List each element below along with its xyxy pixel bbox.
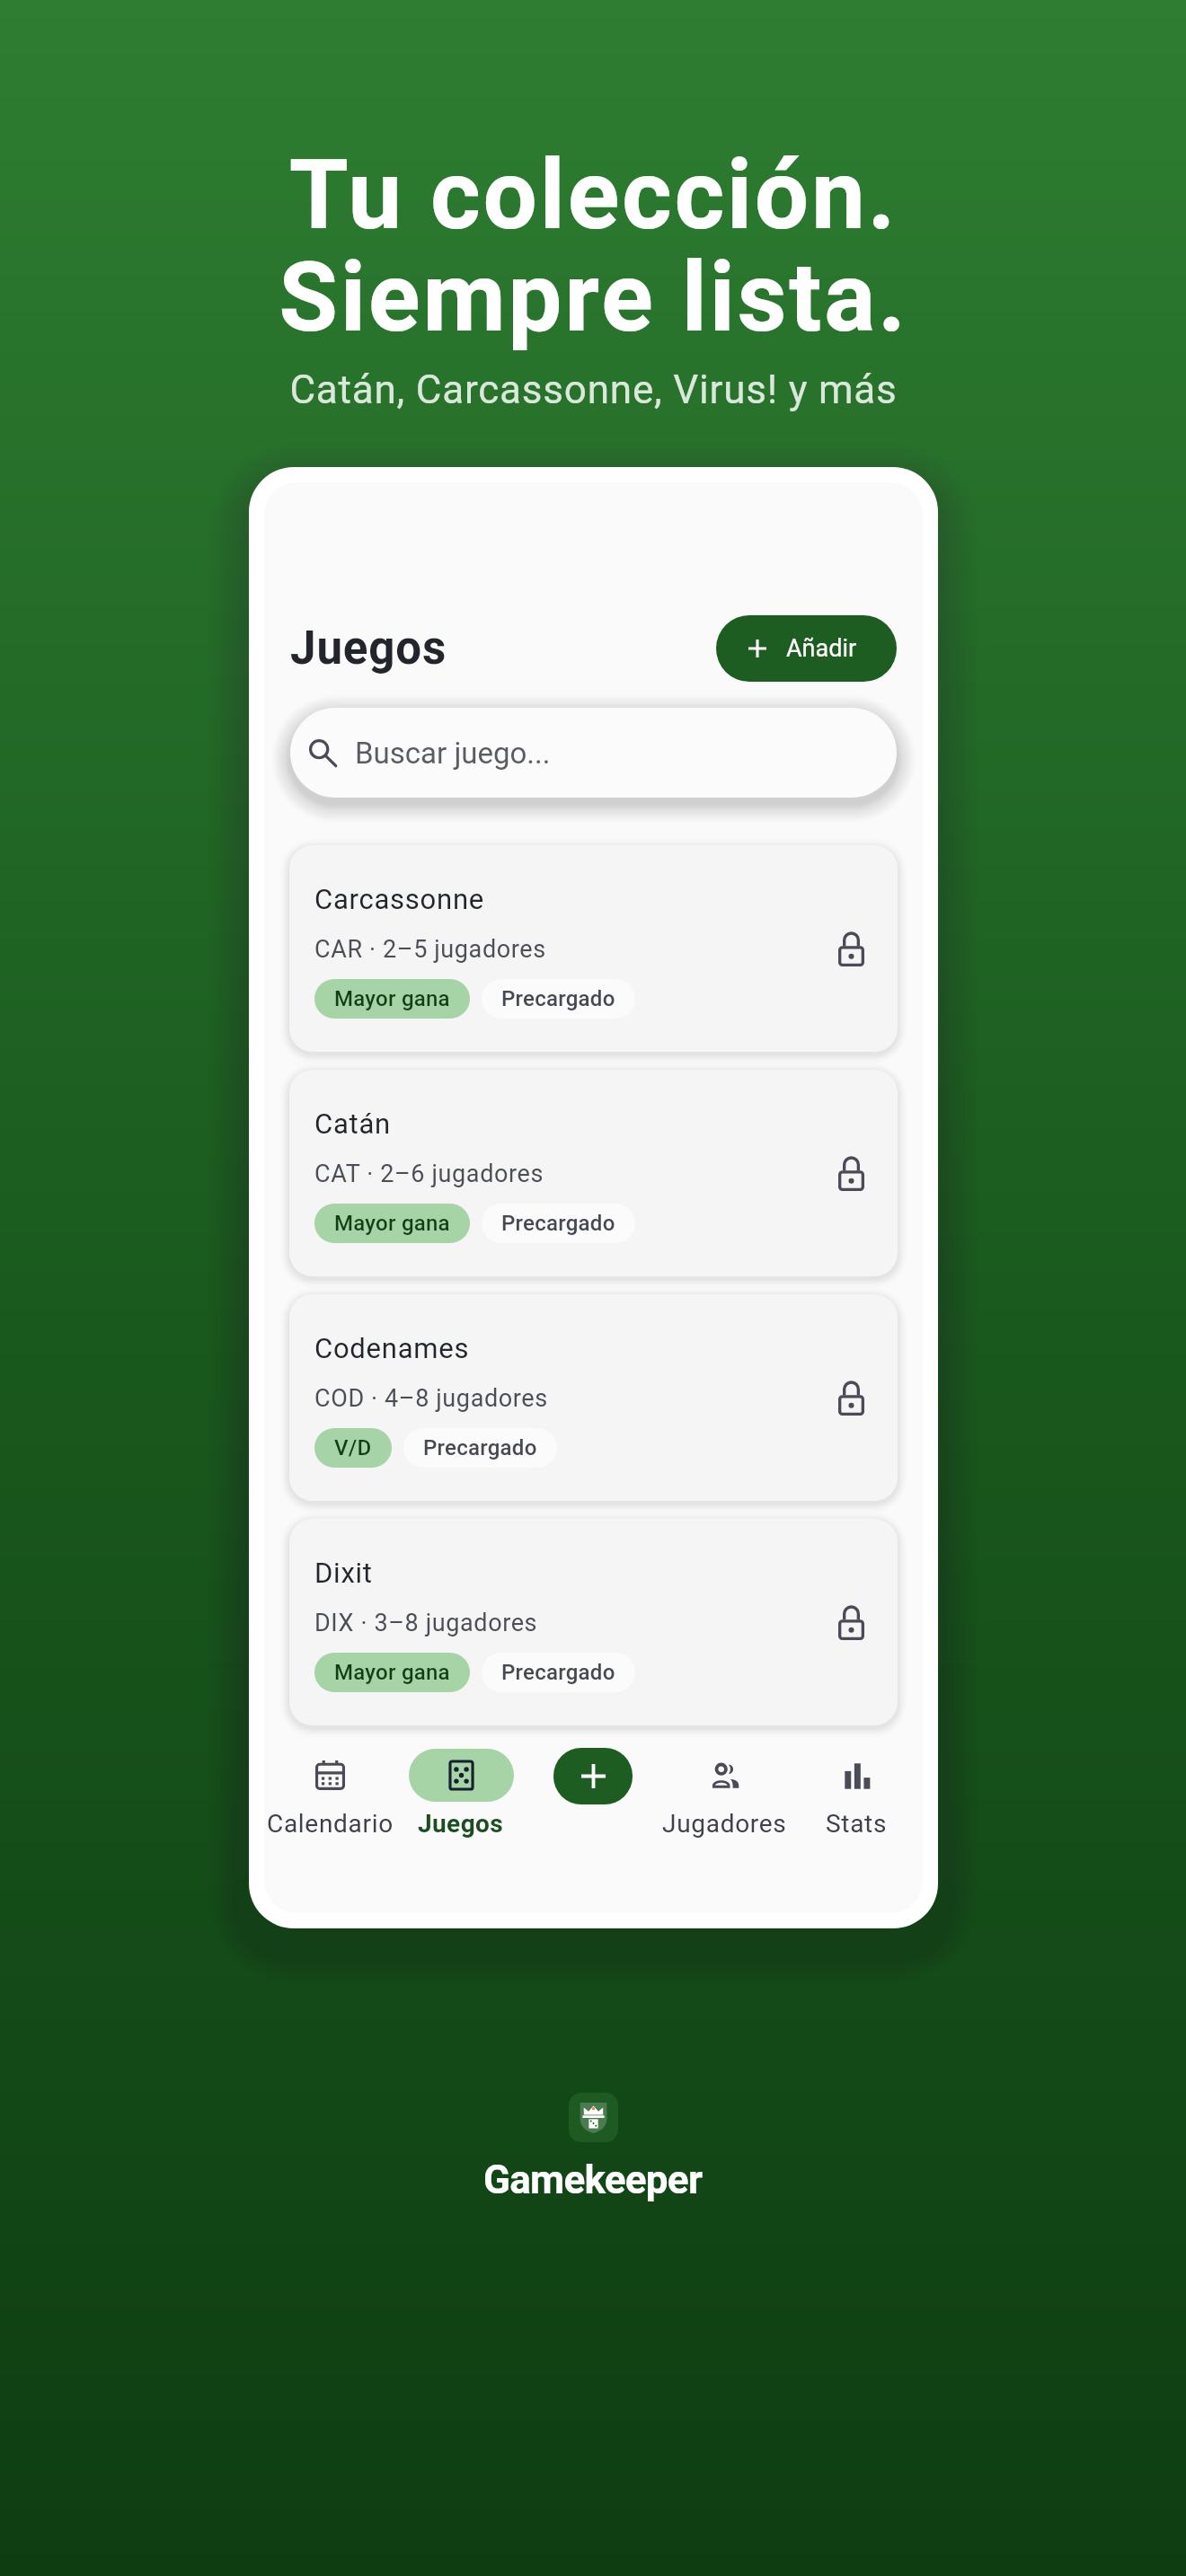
staticText: Gamekeeper <box>483 2157 703 2203</box>
other: Gamekeeper <box>569 2093 618 2142</box>
staticText: V/D <box>334 1435 372 1460</box>
button[interactable]: Carcassonne <box>289 845 898 1052</box>
staticText: Catán, Carcassonne, Virus! y más <box>289 366 898 413</box>
staticText: CAR · 2–5 jugadores <box>314 935 546 964</box>
button[interactable]: Juegos <box>395 1748 527 1839</box>
staticText: Jugadores <box>662 1809 787 1839</box>
button[interactable]: Calendario <box>264 1748 395 1839</box>
button[interactable]: Codenames <box>289 1294 898 1501</box>
staticText: Stats <box>826 1809 888 1839</box>
button[interactable]: Jugadores <box>659 1748 791 1839</box>
staticText: Mayor gana <box>334 1211 450 1236</box>
staticText: CAT · 2–6 jugadores <box>314 1160 544 1188</box>
staticText: Añadir <box>786 634 857 663</box>
button[interactable]: Añadir <box>716 615 897 682</box>
staticText: Mayor gana <box>334 1660 450 1685</box>
staticText: Juegos <box>290 622 447 675</box>
staticText: DIX · 3–8 jugadores <box>314 1609 538 1637</box>
button[interactable]: Dixit <box>289 1519 898 1725</box>
staticText: Buscar juego... <box>355 736 551 771</box>
staticText: Tu colección. Siempre lista. <box>279 139 908 354</box>
staticText: Dixit <box>314 1557 373 1589</box>
staticText: Mayor gana <box>334 986 450 1011</box>
staticText: Catán <box>314 1107 391 1140</box>
staticText: COD · 4–8 jugadores <box>314 1384 548 1413</box>
staticText: Carcassonne <box>314 883 484 915</box>
staticText: Precargado <box>501 1660 615 1685</box>
staticText: Precargado <box>501 1211 615 1236</box>
button[interactable]: Catán <box>289 1070 898 1276</box>
staticText: Precargado <box>423 1435 537 1460</box>
button[interactable]: Añadir partida <box>553 1748 633 1804</box>
staticText: Precargado <box>501 986 615 1011</box>
button[interactable]: Buscar juego... <box>290 708 897 798</box>
staticText: Codenames <box>314 1332 470 1364</box>
button[interactable]: Stats <box>791 1748 923 1839</box>
staticText: Juegos <box>418 1809 504 1839</box>
staticText: Calendario <box>267 1809 394 1839</box>
